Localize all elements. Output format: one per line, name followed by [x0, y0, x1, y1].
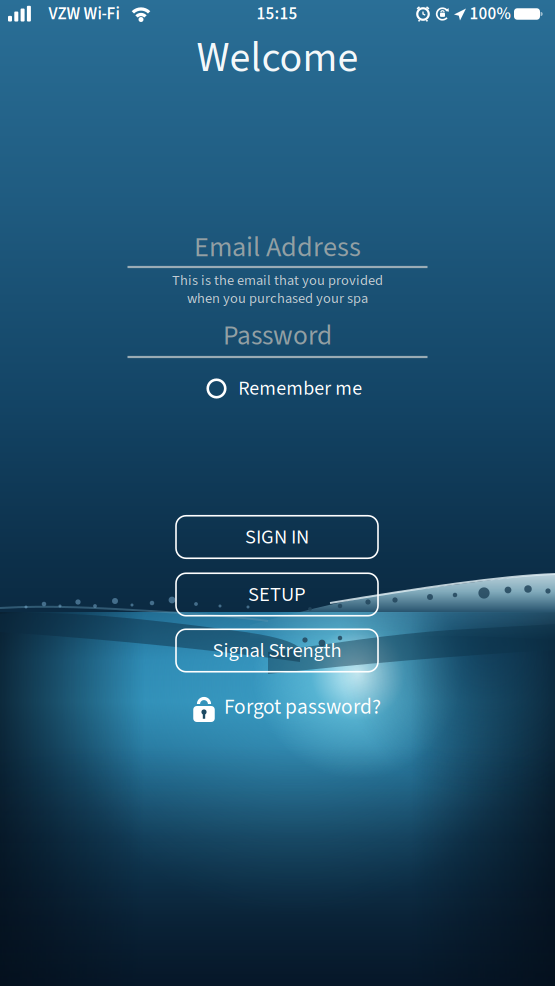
- staticText: SETUP: [248, 580, 306, 609]
- button[interactable]: SIGN IN: [176, 516, 378, 558]
- staticText: Email Address: [194, 227, 361, 268]
- staticText: VZW Wi-Fi: [48, 2, 119, 26]
- staticText: 100%: [469, 2, 510, 26]
- staticText: SIGN IN: [245, 522, 309, 552]
- button[interactable]: Password: [127, 317, 427, 363]
- staticText: This is the email that you provided: [172, 270, 383, 291]
- button[interactable]: Forgot password?: [193, 690, 381, 724]
- staticText: Password: [223, 316, 332, 355]
- staticText: Welcome: [196, 28, 358, 88]
- button[interactable]: SETUP: [176, 573, 378, 616]
- staticText: Forgot password?: [224, 692, 381, 722]
- button[interactable]: Remember me: [208, 373, 362, 403]
- staticText: Remember me: [238, 374, 362, 403]
- button[interactable]: Email Address: [127, 219, 427, 309]
- staticText: 15:15: [256, 2, 297, 26]
- staticText: when you purchased your spa: [187, 288, 368, 309]
- button[interactable]: Signal Strength: [176, 629, 378, 672]
- staticText: Signal Strength: [212, 636, 341, 665]
